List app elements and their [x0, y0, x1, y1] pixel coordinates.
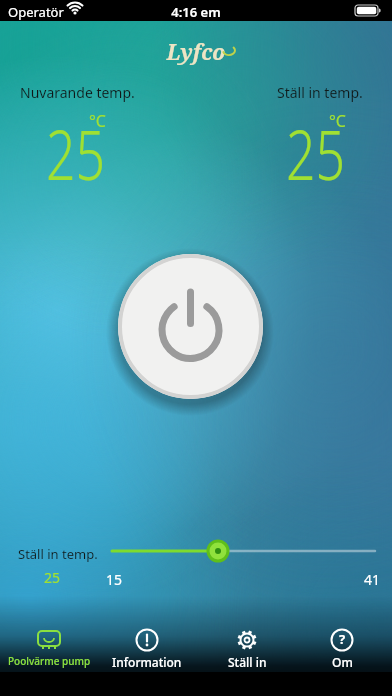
staticText: Ställ in temp. [18, 545, 98, 563]
button[interactable]: ? [317, 628, 367, 670]
staticText: 4:16 em [0, 3, 392, 21]
staticText: ? [339, 630, 346, 648]
button[interactable]: Information [102, 628, 192, 670]
button[interactable]: Poolvärme pump [0, 628, 98, 670]
staticText: Nuvarande temp. [20, 83, 135, 102]
staticText: Ställ in [228, 654, 267, 670]
button[interactable] [118, 254, 263, 399]
staticText: 15 [106, 570, 123, 589]
staticText: Operatör [8, 3, 64, 21]
staticText: 25 [44, 568, 61, 587]
staticText: 25 [46, 107, 105, 187]
staticText: Om [332, 654, 353, 670]
staticText: 25 [286, 107, 345, 187]
staticText: Information [112, 654, 182, 670]
staticText: Ställ in temp. [277, 83, 363, 102]
staticText: Lyfco [0, 38, 392, 67]
staticText: °C [329, 110, 346, 132]
staticText: °C [89, 110, 106, 132]
staticText: 41 [364, 570, 381, 589]
staticText: Poolvärme pump [8, 654, 91, 668]
button[interactable]: Ställ in [212, 628, 282, 670]
button[interactable] [0, 0, 392, 696]
